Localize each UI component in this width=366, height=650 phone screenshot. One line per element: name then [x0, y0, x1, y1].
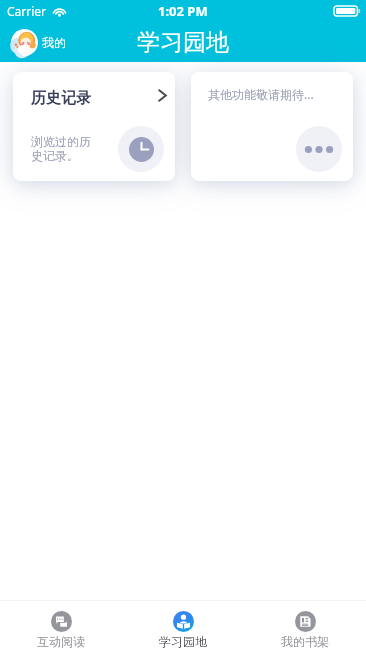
- staticText: 1:02 PM: [158, 2, 208, 20]
- staticText: 浏览过的历 史记录。: [31, 134, 91, 164]
- button[interactable]: 互动阅读: [0, 601, 122, 650]
- other: Wi-Fi: [52, 6, 67, 17]
- staticText: 我的书架: [281, 634, 329, 649]
- staticText: 学习园地: [137, 28, 229, 57]
- button[interactable]: 学习园地: [122, 601, 244, 650]
- button[interactable]: 历史记录: [13, 72, 175, 181]
- staticText: 学习园地: [159, 634, 207, 649]
- button[interactable]: 其他功能敬请期待...: [191, 72, 353, 181]
- staticText: Carrier: [7, 3, 47, 19]
- other: Profile: [11, 29, 38, 56]
- staticText: 互动阅读: [37, 634, 85, 649]
- button[interactable]: Profile: [11, 29, 66, 56]
- staticText: 历史记录: [31, 89, 91, 108]
- staticText: 我的: [42, 35, 66, 50]
- button[interactable]: 我的书架: [244, 601, 366, 650]
- staticText: 其他功能敬请期待...: [208, 86, 314, 102]
